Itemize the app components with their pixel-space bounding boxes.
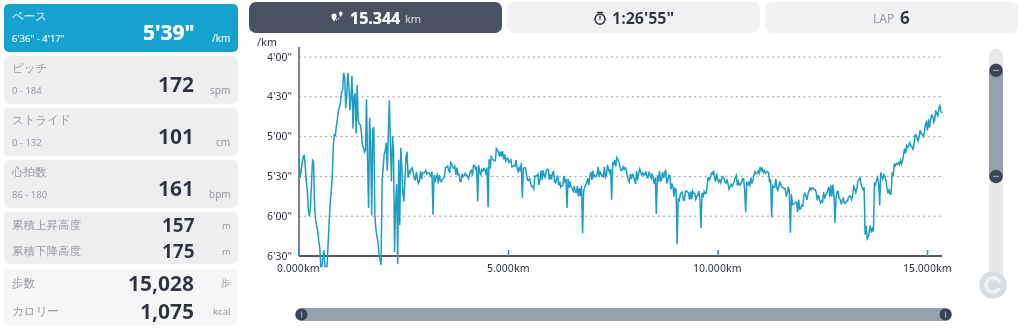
staticText: 86 - 180 <box>12 188 48 201</box>
staticText: 1:26'55" <box>612 7 675 29</box>
staticText: 心拍数 <box>12 165 47 179</box>
button[interactable]: LAP <box>765 2 1018 33</box>
staticText: 歩 <box>221 277 231 289</box>
staticText: 0 - 132 <box>12 136 42 149</box>
staticText: 0.000km <box>277 261 320 275</box>
staticText: 6'00" <box>267 209 293 223</box>
staticText: 15,028 <box>128 269 195 297</box>
staticText: ペース <box>12 9 48 23</box>
staticText: spm <box>210 83 231 97</box>
button[interactable]: Horizontal range <box>295 308 952 321</box>
staticText: 6'30" <box>267 249 293 263</box>
staticText: 4'30" <box>267 89 293 103</box>
staticText: kcal <box>213 305 231 318</box>
staticText: /km <box>257 35 277 49</box>
button[interactable]: 心拍数 <box>4 160 238 208</box>
staticText: 5'39" <box>143 18 195 47</box>
staticText: bpm <box>209 187 231 201</box>
staticText: 0 - 184 <box>12 84 42 97</box>
staticText: cm <box>216 135 231 149</box>
staticText: 6 <box>900 6 910 29</box>
button[interactable]: Reset zoom <box>978 270 1008 300</box>
staticText: 172 <box>158 70 195 99</box>
staticText: 累積上昇高度 <box>12 218 81 232</box>
staticText: m <box>222 245 231 258</box>
staticText: 1,075 <box>140 297 195 325</box>
staticText: 15.000km <box>903 261 952 275</box>
staticText: 101 <box>158 122 195 151</box>
staticText: ストライド <box>12 113 71 127</box>
button[interactable]: ピッチ <box>4 56 238 104</box>
button[interactable]: 1:26'55" <box>507 2 760 33</box>
staticText: 5.000km <box>487 261 530 275</box>
staticText: カロリー <box>12 304 59 318</box>
staticText: 6'36" - 4'17" <box>12 32 65 45</box>
staticText: km <box>405 11 422 26</box>
button[interactable]: 累積上昇高度 <box>4 212 238 264</box>
staticText: m <box>222 219 231 232</box>
staticText: 175 <box>162 238 195 264</box>
staticText: 157 <box>162 212 195 238</box>
button[interactable]: ストライド <box>4 108 238 156</box>
staticText: 15.344 <box>350 7 401 29</box>
button[interactable]: ペース <box>4 4 238 52</box>
staticText: ピッチ <box>12 61 48 75</box>
button[interactable]: Vertical zoom <box>989 49 1003 289</box>
staticText: 累積下降高度 <box>12 244 81 258</box>
staticText: 歩数 <box>12 276 35 290</box>
staticText: /km <box>212 31 231 45</box>
button[interactable]: 15.344 <box>249 2 502 33</box>
staticText: 5'30" <box>267 169 293 183</box>
staticText: 161 <box>158 174 195 203</box>
staticText: LAP <box>873 10 895 26</box>
button[interactable]: 歩数 <box>4 269 238 325</box>
staticText: 10.000km <box>693 261 742 275</box>
staticText: 5'00" <box>267 129 293 143</box>
staticText: 4'00" <box>267 50 293 64</box>
